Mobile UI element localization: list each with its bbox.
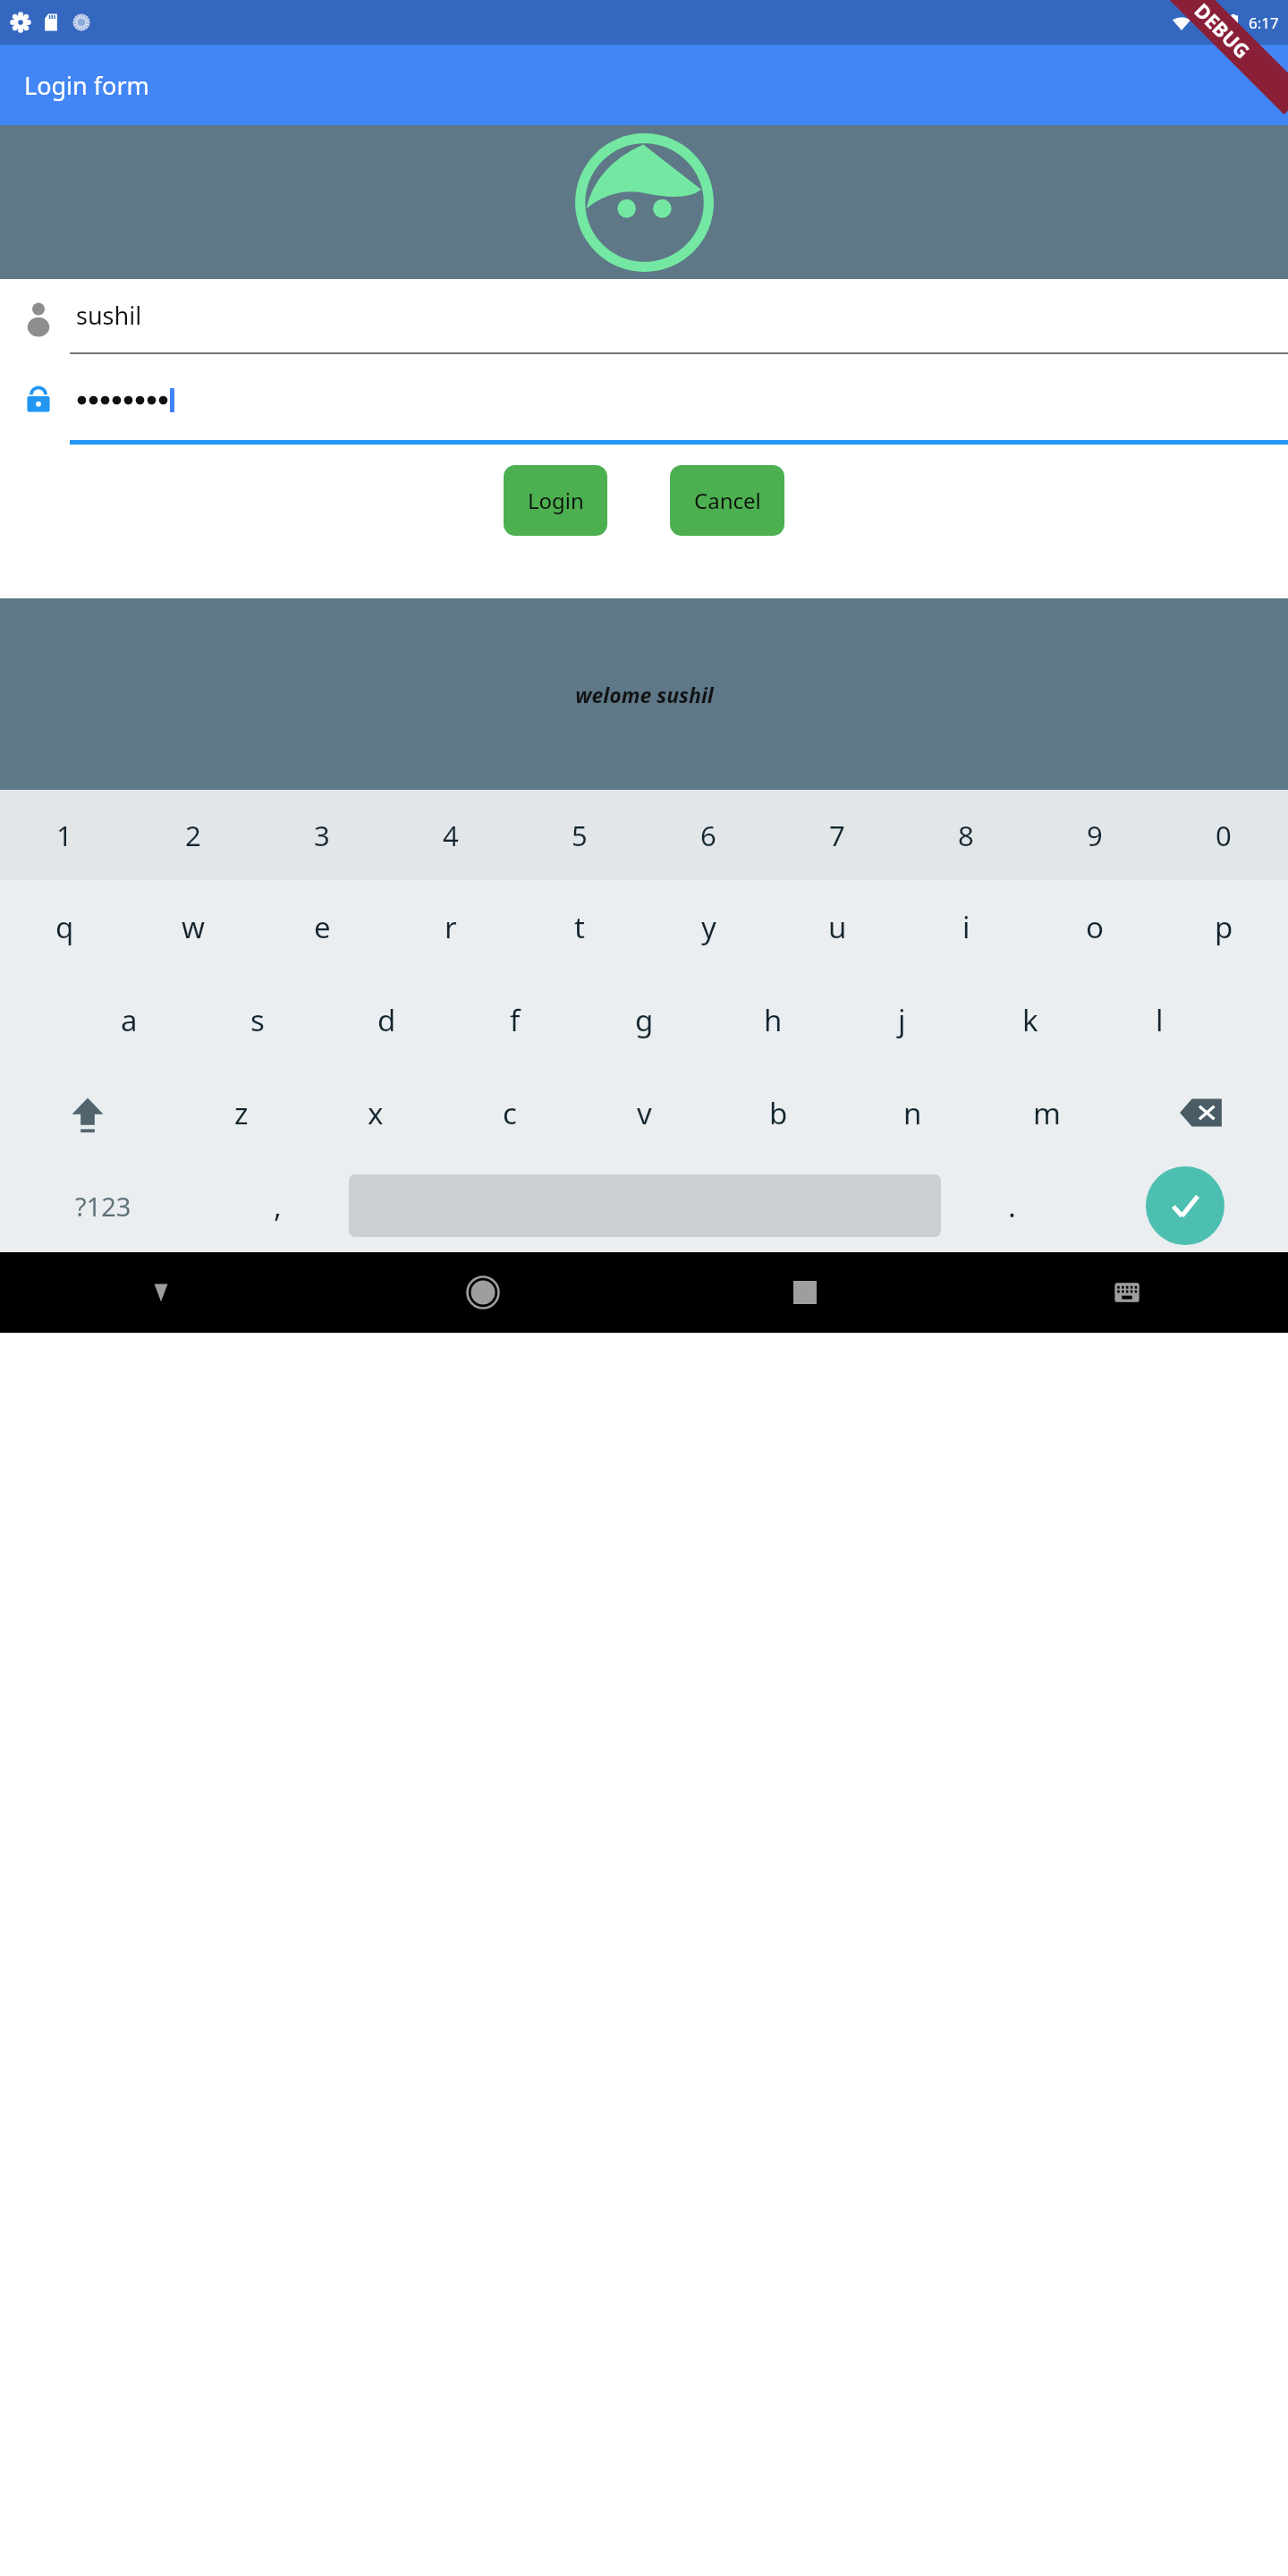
staticText: 2 <box>185 817 201 854</box>
button[interactable]: o <box>1030 880 1159 973</box>
staticText: , <box>274 1186 282 1226</box>
button[interactable]: u <box>773 880 902 973</box>
button[interactable]: r <box>386 880 515 973</box>
staticText: ?123 <box>75 1189 131 1224</box>
button[interactable]: 9 <box>1030 790 1159 880</box>
staticText: s <box>250 1000 265 1040</box>
button[interactable]: d <box>322 973 451 1066</box>
staticText: v <box>637 1093 652 1133</box>
staticText: d <box>377 1000 396 1040</box>
button[interactable]: l <box>1095 973 1224 1066</box>
staticText: o <box>1086 907 1104 947</box>
button[interactable]: j <box>837 973 966 1066</box>
button[interactable]: 2 <box>129 790 258 880</box>
button[interactable]: Backspace <box>1114 1066 1288 1159</box>
button[interactable]: ?123 <box>0 1159 207 1252</box>
staticText: f <box>510 1000 521 1040</box>
button[interactable]: Home <box>322 1252 644 1333</box>
button[interactable]: h <box>708 973 837 1066</box>
staticText: t <box>574 907 585 947</box>
staticText: a <box>121 1000 138 1040</box>
staticText: k <box>1022 1000 1038 1040</box>
button[interactable]: sushil <box>0 279 1288 351</box>
staticText: g <box>635 1000 654 1040</box>
button[interactable]: 0 <box>1159 790 1288 880</box>
staticText: 8 <box>958 817 974 854</box>
button[interactable]: 1 <box>0 790 129 880</box>
staticText: 4 <box>443 817 459 854</box>
button[interactable]: 3 <box>258 790 386 880</box>
staticText: 9 <box>1087 817 1103 854</box>
button[interactable]: z <box>174 1066 309 1159</box>
staticText: . <box>1008 1186 1016 1226</box>
button[interactable]: 6 <box>644 790 773 880</box>
staticText: 5 <box>572 817 588 854</box>
button[interactable] <box>0 364 1288 436</box>
button[interactable]: x <box>309 1066 443 1159</box>
staticText: u <box>828 907 847 947</box>
staticText: n <box>903 1093 922 1133</box>
staticText: sushil <box>76 299 142 332</box>
staticText: DEBUG <box>1189 0 1256 64</box>
button[interactable]: Cancel <box>670 465 784 536</box>
button[interactable]: w <box>129 880 258 973</box>
button[interactable]: s <box>193 973 322 1066</box>
staticText: i <box>962 907 970 947</box>
button[interactable]: g <box>580 973 708 1066</box>
staticText: Cancel <box>694 486 761 515</box>
button[interactable]: b <box>711 1066 845 1159</box>
button[interactable]: p <box>1159 880 1288 973</box>
button[interactable]: m <box>979 1066 1114 1159</box>
staticText: c <box>503 1093 517 1133</box>
staticText: w <box>182 907 205 947</box>
staticText: Login <box>528 486 584 515</box>
staticText: q <box>55 907 74 947</box>
button[interactable]: Back <box>0 1252 322 1333</box>
button[interactable]: e <box>258 880 386 973</box>
staticText: 3 <box>314 817 330 854</box>
button[interactable]: , <box>207 1159 349 1252</box>
staticText: m <box>1033 1093 1061 1133</box>
button[interactable]: Switch keyboard <box>966 1252 1288 1333</box>
staticText: p <box>1215 907 1233 947</box>
staticText: r <box>445 907 457 947</box>
staticText: j <box>898 1000 906 1040</box>
button[interactable]: i <box>902 880 1030 973</box>
button[interactable]: Enter <box>1146 1166 1224 1245</box>
button[interactable]: 4 <box>386 790 515 880</box>
button[interactable]: n <box>845 1066 979 1159</box>
button[interactable]: Login <box>504 465 607 536</box>
button[interactable]: 8 <box>902 790 1030 880</box>
staticText: 6:17 <box>1249 13 1279 33</box>
staticText: 1 <box>56 817 72 854</box>
button[interactable]: 7 <box>773 790 902 880</box>
staticText: 6 <box>700 817 716 854</box>
staticText: l <box>1156 1000 1164 1040</box>
button[interactable]: Space <box>349 1174 941 1237</box>
staticText: 0 <box>1216 817 1232 854</box>
button[interactable]: q <box>0 880 129 973</box>
button[interactable]: Shift <box>0 1066 174 1159</box>
button[interactable]: t <box>515 880 644 973</box>
staticText: x <box>368 1093 384 1133</box>
button[interactable]: Recents <box>644 1252 966 1333</box>
button[interactable]: k <box>966 973 1095 1066</box>
button[interactable]: f <box>451 973 580 1066</box>
staticText: b <box>769 1093 788 1133</box>
button[interactable]: 5 <box>515 790 644 880</box>
button[interactable]: a <box>64 973 193 1066</box>
staticText: e <box>314 907 331 947</box>
staticText: y <box>701 907 716 947</box>
staticText: Login form <box>24 69 149 102</box>
button[interactable]: . <box>941 1159 1082 1252</box>
staticText: h <box>764 1000 783 1040</box>
button[interactable]: v <box>577 1066 711 1159</box>
staticText: z <box>234 1093 249 1133</box>
button[interactable]: c <box>443 1066 577 1159</box>
staticText: welome sushil <box>575 681 714 708</box>
button[interactable]: y <box>644 880 773 973</box>
staticText: 7 <box>829 817 845 854</box>
